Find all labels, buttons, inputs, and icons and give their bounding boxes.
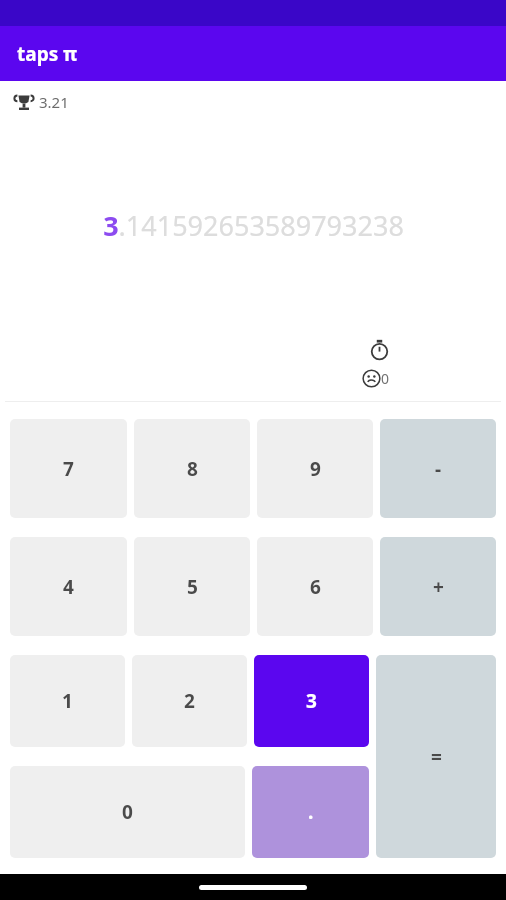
button[interactable]: 3 [254, 655, 369, 747]
button[interactable]: 2 [132, 655, 247, 747]
staticText: taps π [17, 41, 78, 67]
button[interactable]: = [376, 655, 496, 858]
button[interactable]: 0 [10, 766, 245, 858]
staticText: + [433, 574, 444, 600]
staticText: 2 [184, 688, 195, 714]
staticText: 7 [63, 456, 74, 482]
staticText: 5 [187, 574, 198, 600]
button[interactable]: 8 [134, 419, 250, 518]
other: Timer [369, 339, 390, 360]
button[interactable]: . [252, 766, 369, 858]
staticText: 4 [63, 574, 74, 600]
staticText: - [435, 456, 442, 482]
button[interactable]: - [380, 419, 496, 518]
staticText: 1 [62, 688, 73, 714]
button[interactable]: 7 [10, 419, 127, 518]
staticText: 3.21 [39, 92, 69, 112]
staticText: 0 [122, 799, 133, 825]
button[interactable]: 9 [257, 419, 373, 518]
staticText: = [431, 744, 442, 770]
staticText: 8 [187, 456, 198, 482]
button[interactable]: 6 [257, 537, 373, 636]
button[interactable]: 1 [10, 655, 125, 747]
staticText: . [308, 799, 314, 825]
staticText: 0 [381, 369, 390, 388]
button[interactable]: + [380, 537, 496, 636]
staticText: 6 [310, 574, 321, 600]
staticText: 3 [306, 688, 317, 714]
staticText: 9 [310, 456, 321, 482]
button[interactable]: 5 [134, 537, 250, 636]
button[interactable]: 4 [10, 537, 127, 636]
staticText: 3.141592653589793238 [103, 207, 404, 244]
